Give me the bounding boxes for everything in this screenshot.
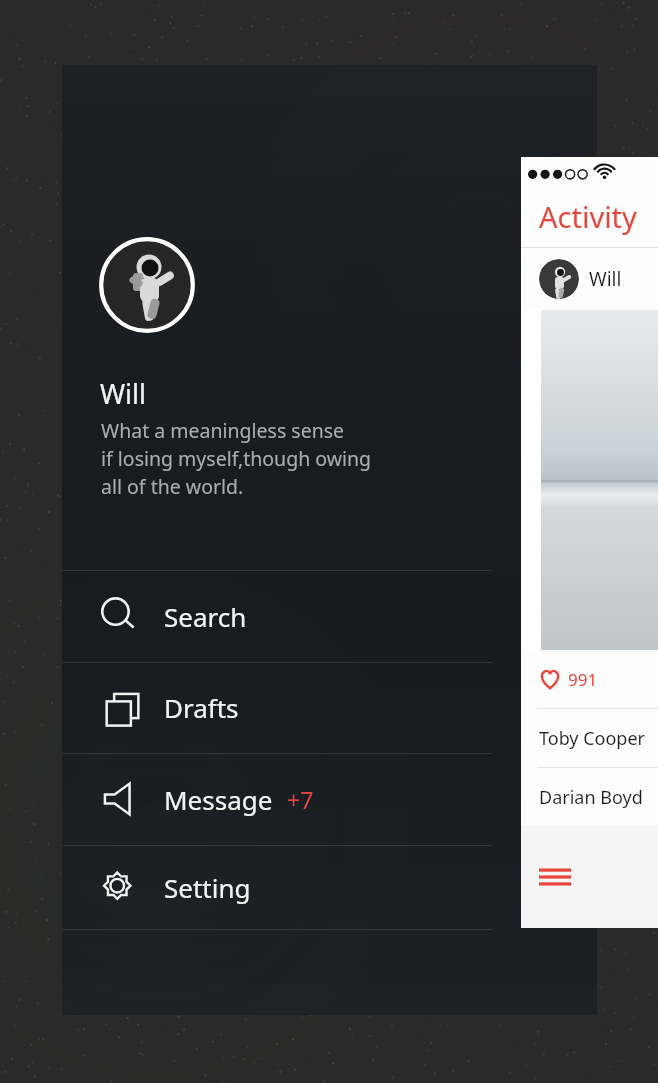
staticText: Will: [589, 266, 622, 292]
button[interactable]: Profile photo: [99, 237, 195, 333]
staticText: Activity: [539, 197, 637, 236]
staticText: Toby Cooper: [539, 726, 646, 751]
button[interactable]: Message: [62, 753, 492, 845]
staticText: +7: [287, 784, 314, 815]
button[interactable]: Darian Boyd: [521, 768, 658, 826]
staticText: Message: [164, 782, 273, 817]
button[interactable]: Drafts: [62, 662, 492, 753]
staticText: Setting: [164, 870, 251, 905]
button[interactable]: Search: [62, 570, 492, 662]
button[interactable]: Menu: [521, 826, 658, 928]
button[interactable]: Setting: [62, 845, 492, 929]
staticText: What a meaningless sense if losing mysel…: [101, 417, 372, 500]
button[interactable]: Will: [521, 248, 658, 310]
staticText: 991: [568, 668, 598, 691]
staticText: Darian Boyd: [539, 785, 643, 810]
staticText: Will: [100, 375, 147, 412]
staticText: Drafts: [164, 690, 239, 725]
staticText: Search: [164, 599, 247, 634]
button[interactable]: Toby Cooper: [521, 709, 658, 767]
button[interactable]: 991: [521, 650, 658, 708]
